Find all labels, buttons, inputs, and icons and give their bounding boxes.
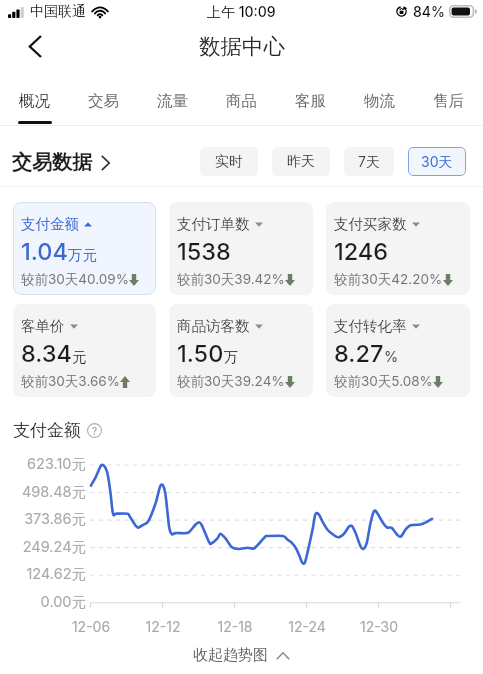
button[interactable]: 支付买家数 xyxy=(326,202,470,295)
button[interactable]: 支付金额 xyxy=(13,202,156,295)
staticText: 较前30天42.20% xyxy=(334,271,443,288)
button[interactable]: 客单价 xyxy=(13,304,156,397)
staticText: 12-12 xyxy=(139,618,187,635)
button[interactable]: 流量 xyxy=(138,70,207,126)
staticText: 623.10元 xyxy=(0,455,86,473)
button[interactable]: 7天 xyxy=(344,147,394,176)
staticText: 上午 10:09 xyxy=(207,3,276,21)
staticText: 万 xyxy=(224,348,239,366)
staticText: 1538 xyxy=(177,237,231,265)
button[interactable]: 商品 xyxy=(207,70,276,126)
staticText: 12-24 xyxy=(283,618,331,635)
staticText: 支付金额 xyxy=(21,215,79,233)
staticText: 30天 xyxy=(421,153,453,171)
staticText: 7天 xyxy=(358,153,380,171)
staticText: 1.04 xyxy=(21,237,68,265)
button[interactable]: 交易数据 xyxy=(12,150,110,175)
button[interactable]: 昨天 xyxy=(272,147,330,176)
staticText: 8.34 xyxy=(21,339,72,367)
staticText: 498.48元 xyxy=(0,483,86,501)
staticText: 373.86元 xyxy=(0,510,86,528)
button[interactable]: 支付订单数 xyxy=(169,202,313,295)
staticText: 支付转化率 xyxy=(334,317,407,335)
staticText: 中国联通 xyxy=(30,3,86,21)
staticText: 12-30 xyxy=(355,618,403,635)
staticText: 较前30天39.24% xyxy=(177,373,285,390)
staticText: 元 xyxy=(72,348,87,366)
staticText: 较前30天5.08% xyxy=(334,373,433,390)
button[interactable]: 商品访客数 xyxy=(169,304,313,397)
staticText: 84% xyxy=(413,3,445,20)
staticText: 万元 xyxy=(68,246,97,264)
button[interactable]: 售后 xyxy=(414,70,483,126)
staticText: 12-06 xyxy=(67,618,115,635)
staticText: 商品访客数 xyxy=(177,317,250,335)
staticText: 实时 xyxy=(215,153,243,171)
button[interactable]: 概况 xyxy=(0,70,69,126)
staticText: 收起趋势图 xyxy=(193,646,268,665)
staticText: 支付金额 xyxy=(13,420,81,441)
button[interactable]: 30天 xyxy=(408,147,466,176)
button[interactable]: 客服 xyxy=(276,70,345,126)
staticText: 12-18 xyxy=(211,618,259,635)
staticText: 客单价 xyxy=(21,317,65,335)
button[interactable]: 支付转化率 xyxy=(326,304,470,397)
staticText: 8.27 xyxy=(334,339,384,367)
staticText: 1246 xyxy=(334,237,389,265)
staticText: 支付订单数 xyxy=(177,215,250,233)
staticText: 249.24元 xyxy=(0,538,86,556)
staticText: 0.00元 xyxy=(0,593,86,611)
button[interactable]: Help xyxy=(87,423,102,438)
staticText: 流量 xyxy=(157,91,188,111)
button[interactable]: 收起趋势图 xyxy=(193,646,290,665)
staticText: 较前30天40.09% xyxy=(21,271,129,288)
staticText: 较前30天39.42% xyxy=(177,271,285,288)
staticText: 124.62元 xyxy=(0,565,86,583)
staticText: 售后 xyxy=(433,91,464,111)
staticText: 1.50 xyxy=(177,339,224,367)
staticText: % xyxy=(384,348,399,366)
staticText: 交易 xyxy=(88,91,119,111)
staticText: 概况 xyxy=(19,91,50,111)
button[interactable]: 物流 xyxy=(345,70,414,126)
staticText: 较前30天3.66% xyxy=(21,373,120,390)
staticText: 昨天 xyxy=(287,153,315,171)
staticText: 商品 xyxy=(226,91,257,111)
button[interactable]: Back xyxy=(0,23,58,70)
staticText: ? xyxy=(92,425,98,437)
staticText: 数据中心 xyxy=(199,33,285,60)
staticText: 物流 xyxy=(364,91,395,111)
staticText: 支付买家数 xyxy=(334,215,407,233)
staticText: 客服 xyxy=(295,91,326,111)
button[interactable]: 实时 xyxy=(200,147,258,176)
button[interactable]: 交易 xyxy=(69,70,138,126)
staticText: 交易数据 xyxy=(12,150,92,175)
